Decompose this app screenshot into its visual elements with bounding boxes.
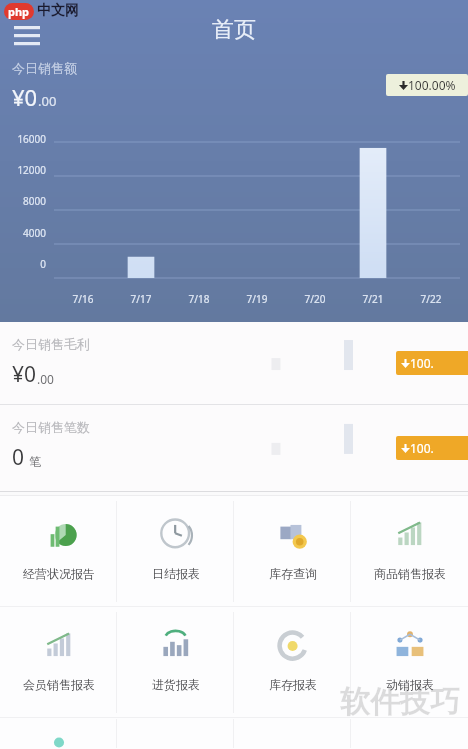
staticText: 7/21 [344, 292, 402, 306]
button[interactable]: 商品销售报表 [351, 496, 468, 606]
staticText: .00 [38, 92, 57, 110]
staticText: .00 [37, 371, 54, 387]
button[interactable]: 经营状况报告 [0, 496, 117, 606]
staticText: 经营状况报告 [23, 566, 95, 581]
staticText: 7/16 [54, 292, 112, 306]
staticText: 首页 [212, 16, 256, 44]
button[interactable]: 今日销售笔数 [0, 405, 468, 491]
staticText: 16000 [0, 132, 46, 146]
staticText: 库存报表 [269, 677, 317, 692]
staticText: 笔 [29, 454, 41, 469]
staticText: 中文网 [37, 2, 79, 20]
staticText: 0 [12, 443, 25, 472]
button[interactable]: 100. [396, 351, 468, 375]
button[interactable]: Menu [12, 20, 44, 52]
button[interactable]: 进货报表 [117, 607, 234, 717]
button[interactable]: 库存查询 [234, 496, 351, 606]
staticText: ¥0 [12, 360, 37, 389]
staticText: 8000 [0, 194, 46, 208]
button[interactable]: 日结报表 [117, 496, 234, 606]
staticText: 会员销售报表 [23, 677, 95, 692]
staticText: 软件技巧 [340, 683, 460, 721]
staticText: 日结报表 [152, 566, 200, 581]
staticText: php [8, 4, 30, 19]
staticText: 今日销售笔数 [12, 419, 90, 435]
staticText: 100.00% [408, 77, 456, 93]
staticText: 动销报表 [386, 677, 434, 692]
button[interactable]: 会员销售报表 [0, 607, 117, 717]
staticText: 7/22 [402, 292, 460, 306]
staticText: ¥0 [12, 82, 38, 112]
staticText: 今日销售毛利 [12, 336, 90, 352]
staticText: 0 [0, 257, 46, 271]
staticText: 4000 [0, 226, 46, 240]
button[interactable]: 100. [396, 436, 468, 460]
staticText: 12000 [0, 163, 46, 177]
staticText: 7/18 [170, 292, 228, 306]
staticText: 100. [410, 440, 434, 456]
staticText: 商品销售报表 [374, 566, 446, 581]
staticText: 今日销售额 [12, 60, 77, 76]
button[interactable]: 库存报表 [234, 607, 351, 717]
staticText: 100. [410, 355, 434, 371]
staticText: 7/20 [286, 292, 344, 306]
staticText: 进货报表 [152, 677, 200, 692]
button[interactable]: 100.00% [386, 74, 468, 96]
staticText: 7/17 [112, 292, 170, 306]
button[interactable]: 动销报表 [351, 607, 468, 717]
button[interactable] [0, 718, 117, 749]
staticText: 7/19 [228, 292, 286, 306]
staticText: 库存查询 [269, 566, 317, 581]
button[interactable]: 今日销售毛利 [0, 322, 468, 404]
